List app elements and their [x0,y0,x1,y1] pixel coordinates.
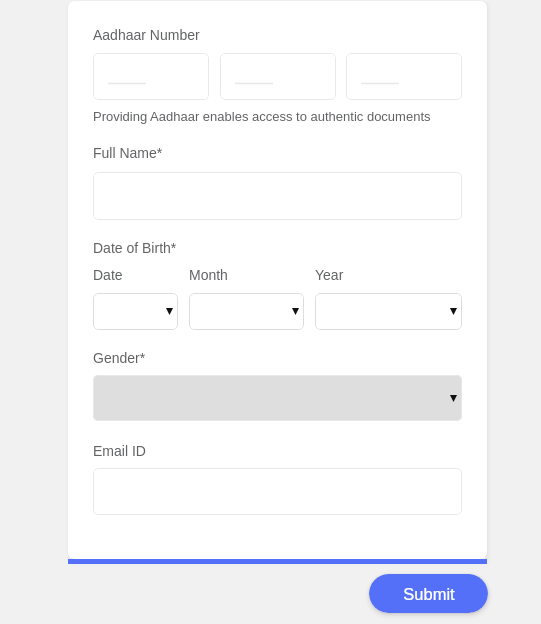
button[interactable]: Full name [93,172,462,220]
button[interactable]: Submit [369,574,488,613]
staticText: Submit [403,585,455,603]
staticText: Date [93,267,123,283]
button[interactable]: Year [315,293,462,330]
button[interactable]: Aadhaar part 3 [346,53,462,100]
button[interactable]: Aadhaar part 1 [93,53,209,100]
staticText: Year [315,267,344,283]
staticText: Aadhaar Number [93,27,200,43]
staticText: Gender* [93,350,146,366]
button[interactable]: Email ID [93,468,462,515]
staticText: Month [189,267,228,283]
staticText: Date of Birth* [93,240,177,256]
button[interactable]: Month [189,293,304,330]
staticText: Providing Aadhaar enables access to auth… [93,109,431,124]
button[interactable]: Date [93,293,178,330]
button[interactable]: Gender [93,375,462,421]
staticText: Email ID [93,443,146,459]
staticText: Full Name* [93,145,163,161]
button[interactable]: Aadhaar part 2 [220,53,336,100]
